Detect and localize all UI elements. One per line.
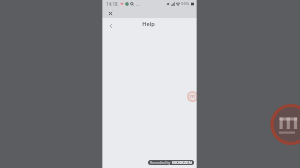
button[interactable]: Back bbox=[105, 20, 116, 31]
staticText: … bbox=[136, 1, 140, 8]
staticText: MOBIZEN bbox=[172, 160, 192, 165]
staticText: 56% bbox=[181, 1, 190, 7]
staticText: Recorded by bbox=[150, 160, 171, 165]
staticText: Help bbox=[142, 20, 155, 28]
button[interactable]: Close bbox=[105, 8, 115, 18]
button[interactable]: Help assistant bbox=[187, 91, 198, 102]
staticText: 14:18 bbox=[106, 1, 118, 7]
